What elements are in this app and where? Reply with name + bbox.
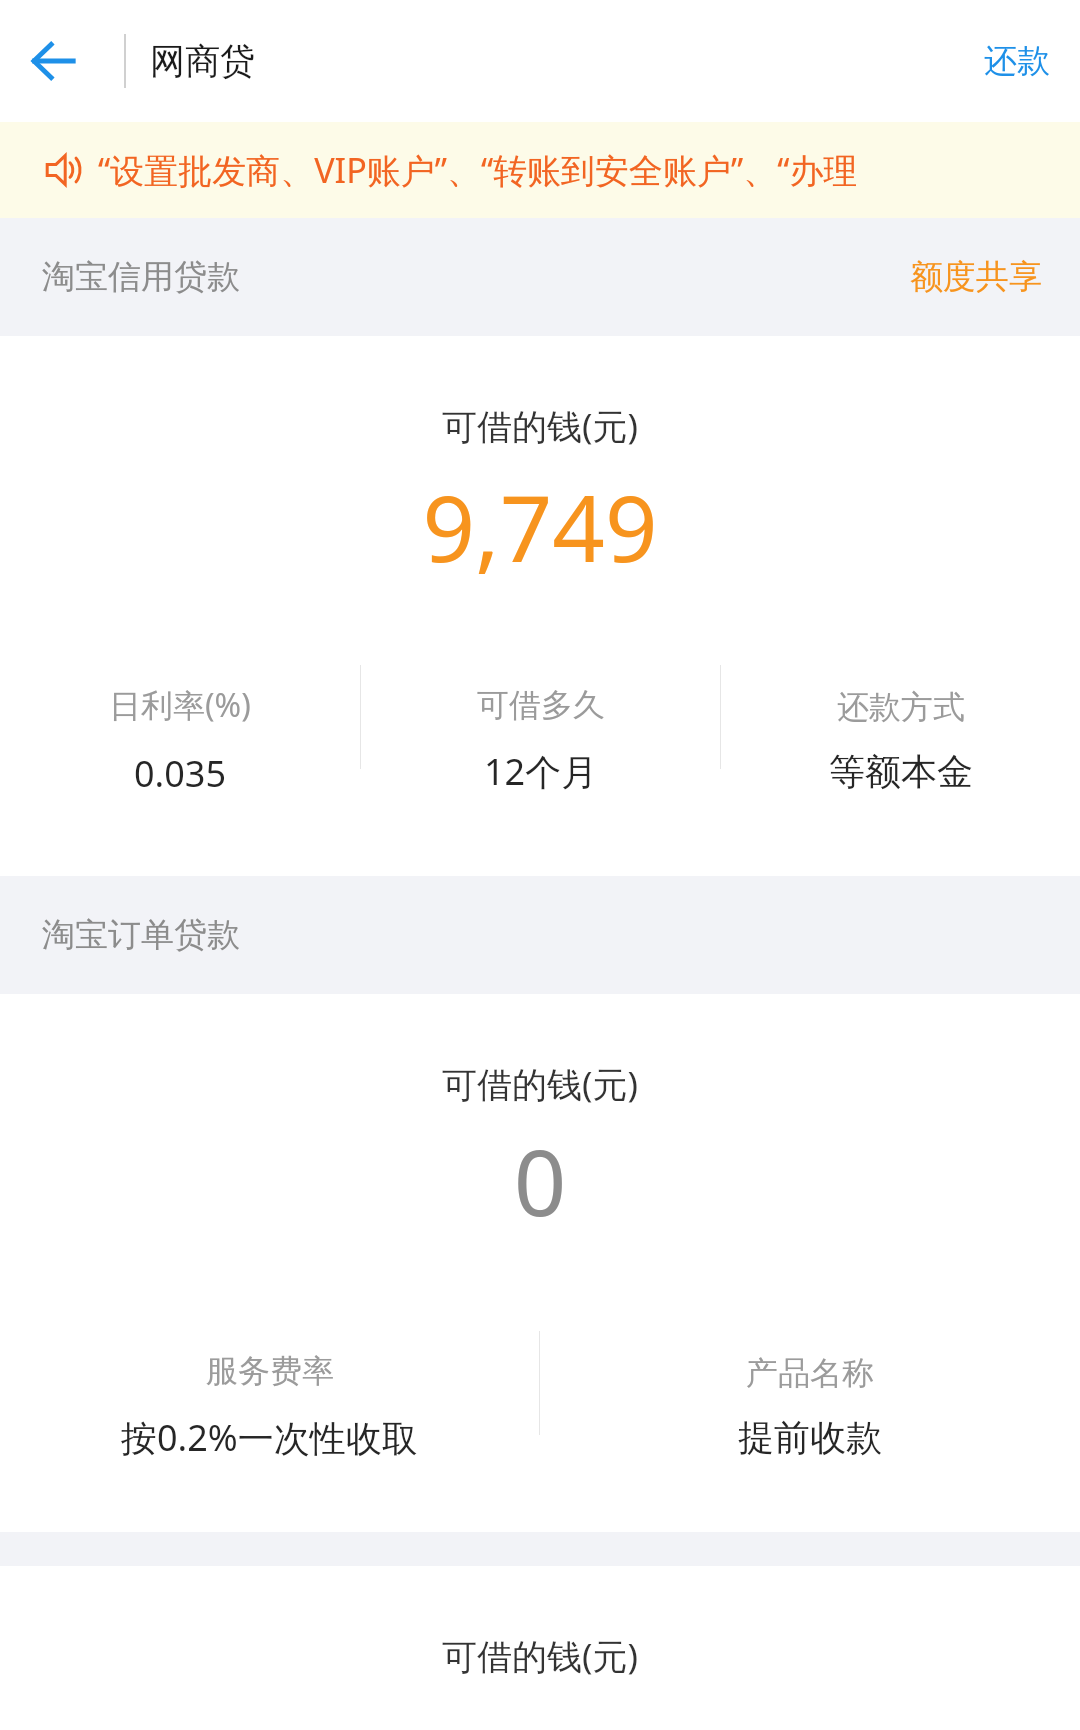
staticText: 淘宝信用贷款 bbox=[42, 256, 240, 298]
staticText: 可借的钱(元) bbox=[0, 402, 1080, 450]
button[interactable]: 还款 bbox=[954, 20, 1080, 102]
staticText: 等额本金 bbox=[829, 749, 973, 794]
staticText: 可借的钱(元) bbox=[0, 1060, 1080, 1108]
staticText: 12个月 bbox=[484, 747, 598, 796]
staticText: 0.035 bbox=[134, 749, 227, 798]
staticText: 还款方式 bbox=[837, 687, 965, 727]
staticText: 日利率(%) bbox=[109, 683, 251, 727]
button[interactable]: 额度共享 bbox=[872, 240, 1080, 314]
button[interactable]: “设置批发商、VIP账户”、“转账到安全账户”、“办理 bbox=[0, 122, 1080, 218]
button[interactable]: 可借的钱(元) bbox=[0, 994, 1080, 1532]
staticText: 可借的钱(元) bbox=[0, 1632, 1080, 1680]
staticText: 9,749 bbox=[0, 464, 1080, 589]
button[interactable]: Back bbox=[14, 22, 92, 100]
button[interactable]: 可借的钱(元) bbox=[0, 336, 1080, 876]
staticText: 服务费率 bbox=[206, 1351, 334, 1391]
staticText: 可借多久 bbox=[477, 685, 605, 725]
staticText: 产品名称 bbox=[746, 1353, 874, 1393]
staticText: 0 bbox=[0, 1118, 1080, 1243]
staticText: 淘宝订单贷款 bbox=[42, 914, 240, 956]
staticText: 还款 bbox=[984, 40, 1050, 82]
staticText: 提前收款 bbox=[738, 1415, 882, 1460]
staticText: 额度共享 bbox=[910, 256, 1042, 298]
staticText: 网商贷 bbox=[150, 39, 255, 83]
staticText: “设置批发商、VIP账户”、“转账到安全账户”、“办理 bbox=[98, 147, 858, 193]
staticText: 按0.2%一次性收取 bbox=[121, 1413, 418, 1462]
